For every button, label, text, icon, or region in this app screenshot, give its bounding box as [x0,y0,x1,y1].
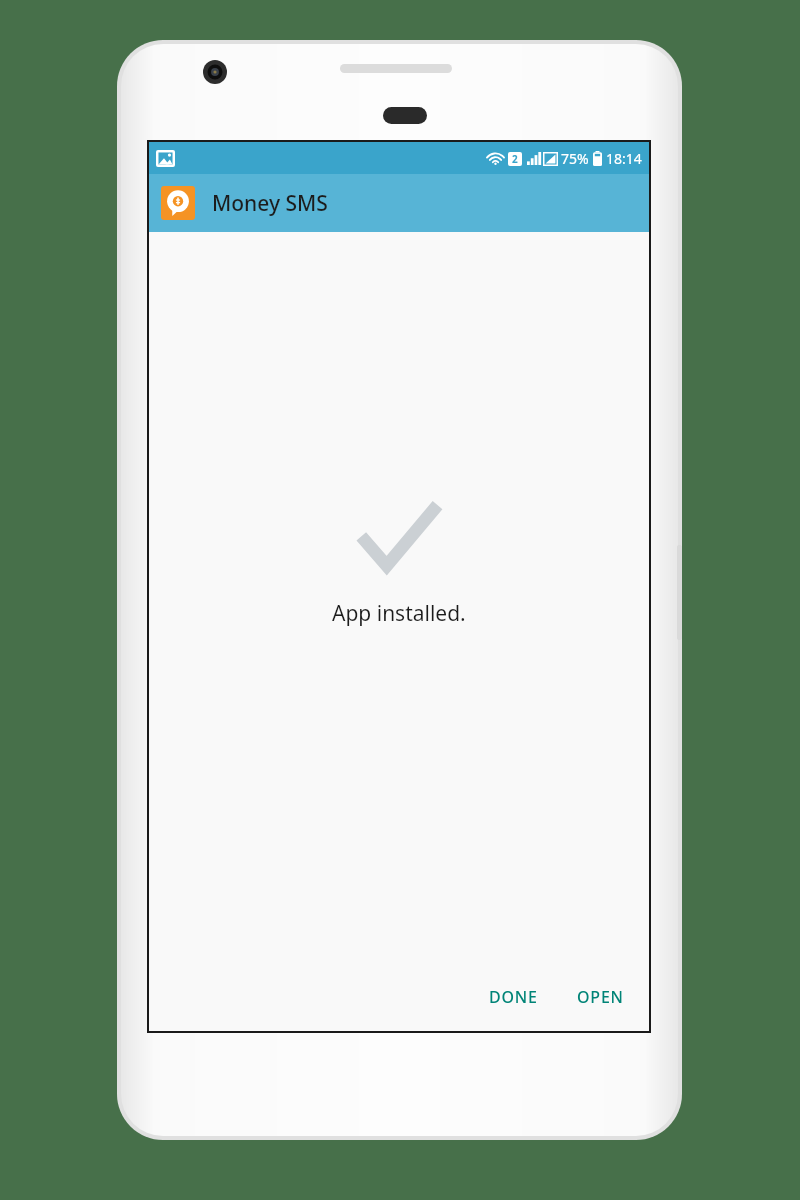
staticText: Money SMS [212,189,328,218]
staticText: DONE [489,986,538,1008]
button[interactable]: Money SMS icon [161,186,195,220]
button[interactable]: DONE [473,976,554,1018]
staticText: 18:14 [606,149,642,168]
staticText: OPEN [577,986,624,1008]
button[interactable]: OPEN [561,976,640,1018]
staticText: 2 [512,152,518,166]
staticText: 75% [561,149,589,168]
staticText: App installed. [332,599,466,628]
